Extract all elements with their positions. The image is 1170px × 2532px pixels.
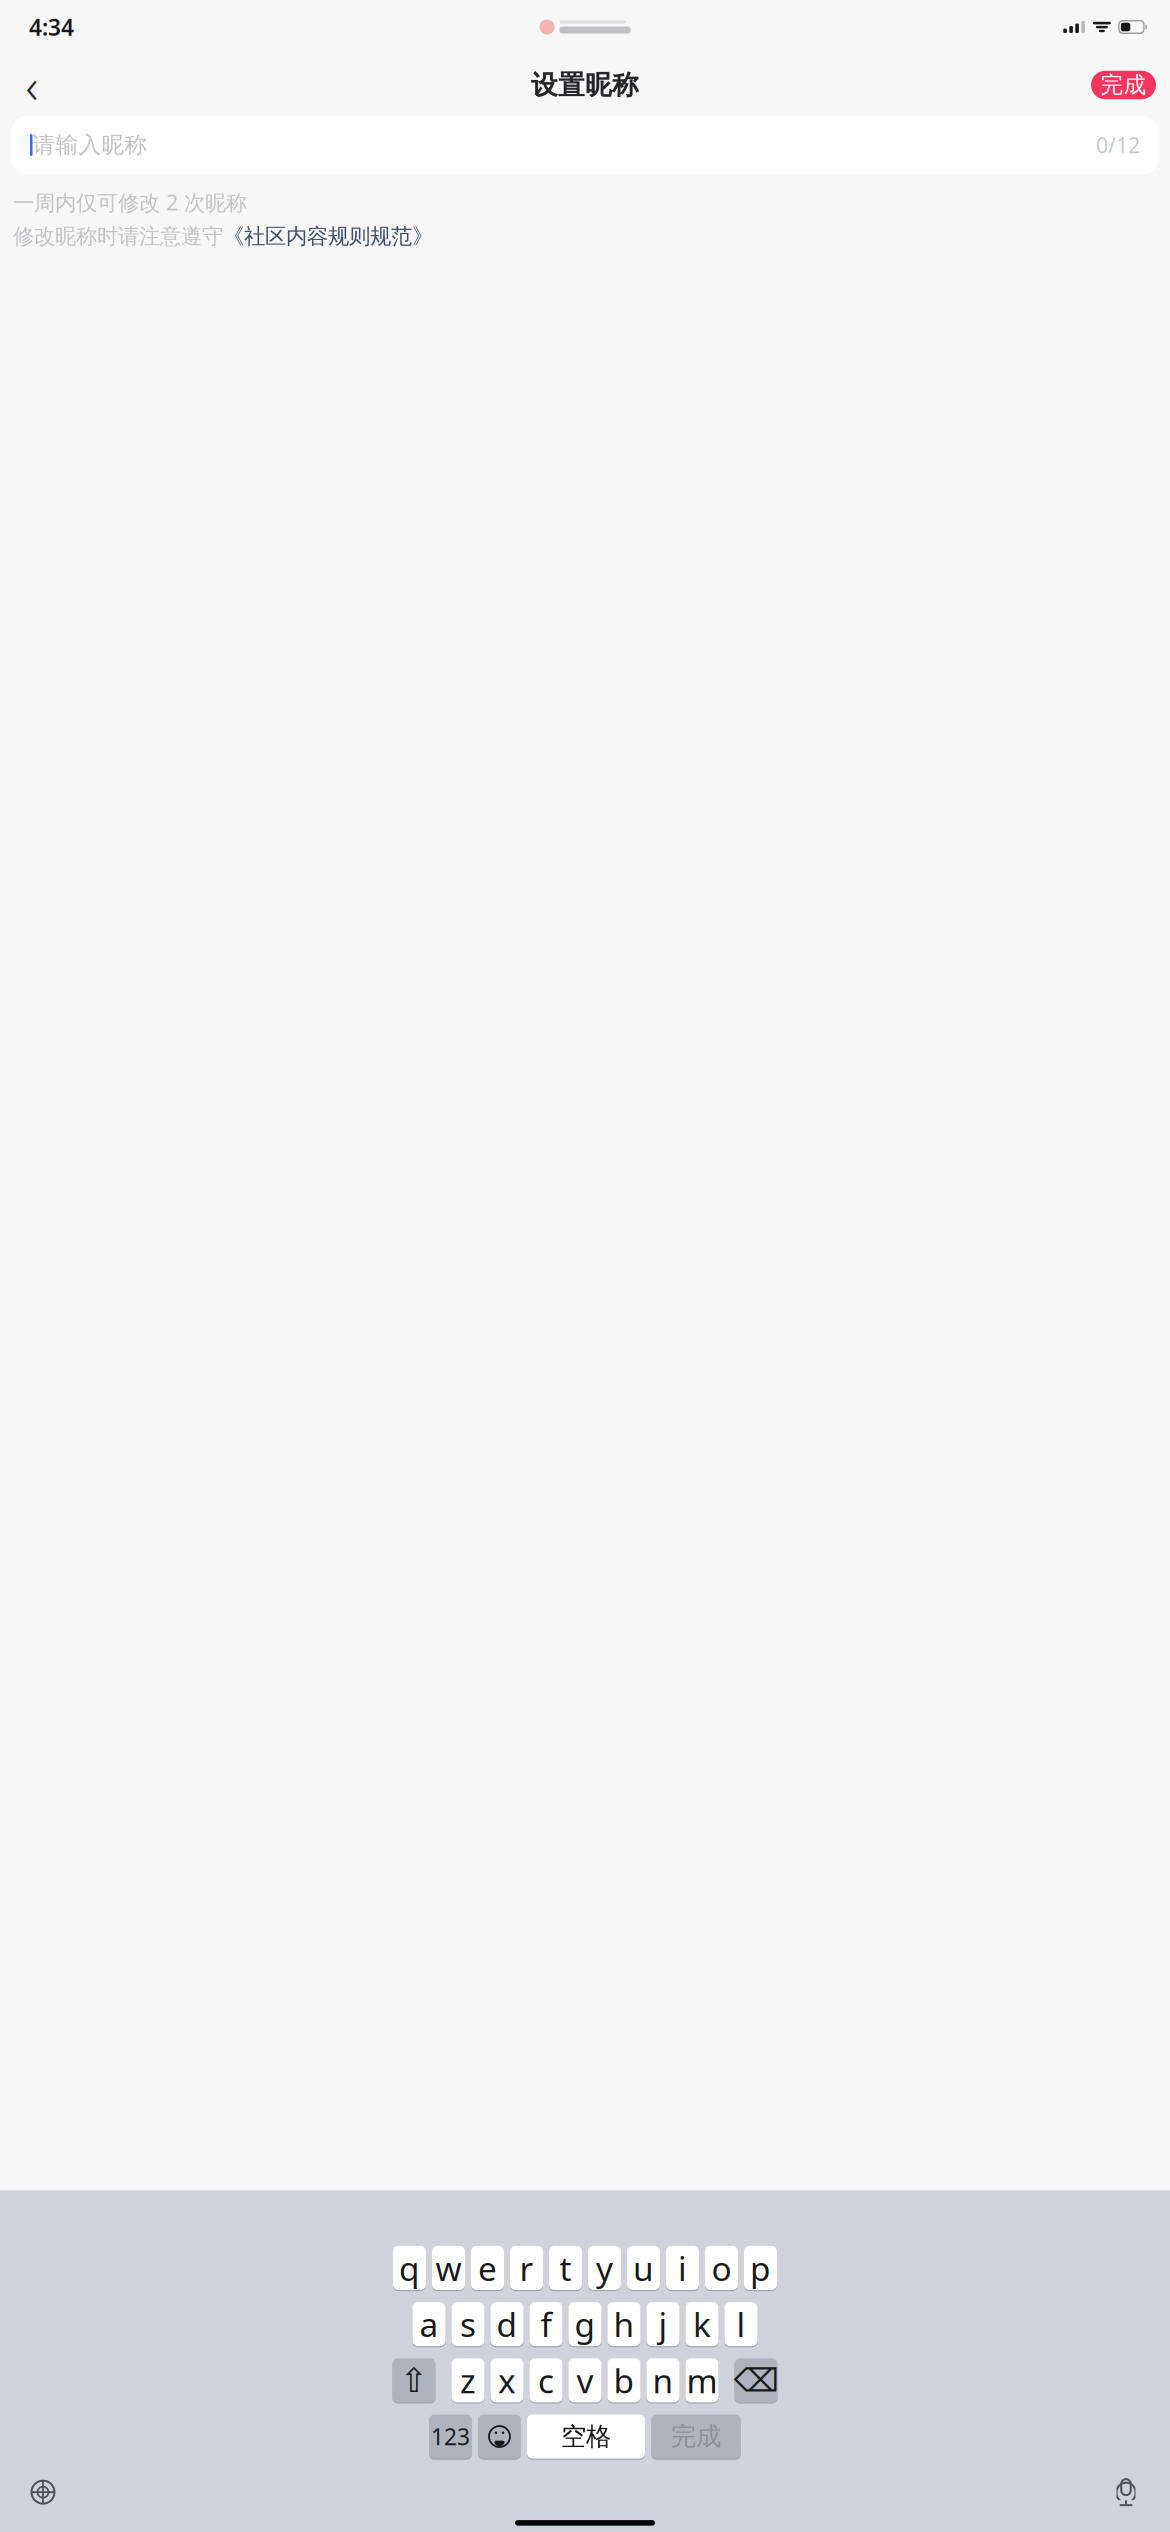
staticText: j [658,2302,667,2346]
button[interactable]: k [685,2301,718,2347]
button[interactable]: 切换键盘 [21,2472,65,2512]
button[interactable]: Shift [392,2358,435,2403]
button[interactable]: w [432,2245,465,2290]
staticText: e [478,2246,497,2290]
staticText: t [559,2246,571,2290]
button[interactable]: 空格 [527,2414,645,2459]
staticText: ⇧ [400,2361,428,2399]
button[interactable]: q [393,2245,426,2290]
staticText: ‹ [25,53,38,117]
button[interactable]: o [705,2245,738,2290]
button[interactable]: e [471,2245,504,2290]
button[interactable]: j [646,2301,679,2347]
staticText: l [736,2302,745,2346]
staticText: r [519,2246,533,2290]
staticText: p [750,2246,771,2290]
staticText: ⌫ [733,2362,778,2398]
staticText: s [460,2302,476,2346]
staticText: o [711,2246,731,2290]
button[interactable]: 完成 [651,2414,741,2459]
staticText: v [576,2358,593,2402]
staticText: y [596,2246,613,2290]
button[interactable]: p [744,2245,777,2290]
staticText: q [399,2246,420,2290]
button[interactable]: x [490,2358,523,2403]
staticText: x [498,2358,516,2402]
button[interactable]: r [510,2245,543,2290]
button[interactable]: y [588,2245,621,2290]
staticText: c [538,2358,554,2402]
button[interactable]: b [607,2358,640,2403]
button[interactable]: s [451,2301,484,2347]
button[interactable]: z [451,2358,484,2403]
staticText: u [633,2246,654,2290]
staticText: n [652,2358,673,2402]
button[interactable]: a [412,2301,445,2347]
button[interactable]: c [529,2358,562,2403]
staticText: z [460,2358,476,2402]
staticText: h [613,2302,634,2346]
button[interactable]: 《社区内容规则规范》 [223,223,433,249]
staticText: w [435,2246,461,2290]
staticText: 4:34 [29,12,74,42]
button[interactable]: f [529,2301,562,2347]
button[interactable]: u [627,2245,660,2290]
staticText: 修改昵称时请注意遵守 [13,223,223,249]
button[interactable]: l [724,2301,757,2347]
staticText: 请输入昵称 [32,131,147,159]
button[interactable]: d [490,2301,523,2347]
button[interactable]: i [666,2245,699,2290]
button[interactable]: 完成 [1091,71,1156,99]
button[interactable]: 返回 [10,63,54,107]
staticText: 设置昵称 [531,69,639,101]
staticText: b [613,2358,634,2402]
staticText: k [693,2302,711,2346]
staticText: 0/12 [1096,131,1140,159]
staticText: g [574,2302,595,2346]
staticText: i [678,2246,687,2290]
button[interactable]: g [568,2301,601,2347]
staticText: d [496,2302,517,2346]
button[interactable]: n [646,2358,679,2403]
staticText: 一周内仅可修改 2 次昵称 [13,188,247,216]
staticText: 《社区内容规则规范》 [223,223,433,249]
staticText: 123 [431,2421,470,2452]
button[interactable]: 表情 [478,2414,521,2459]
staticText: a [419,2302,438,2346]
button[interactable]: v [568,2358,601,2403]
staticText: 完成 [671,2421,721,2452]
staticText: 空格 [561,2421,611,2452]
button[interactable]: t [549,2245,582,2290]
staticText: m [686,2358,717,2402]
button[interactable]: 语音输入 [1104,2472,1148,2512]
staticText: f [540,2302,551,2346]
staticText: 完成 [1100,71,1146,99]
button[interactable]: m [685,2358,718,2403]
button[interactable]: 数字键盘 [429,2414,472,2459]
button[interactable]: 删除 [734,2358,777,2403]
button[interactable]: h [607,2301,640,2347]
